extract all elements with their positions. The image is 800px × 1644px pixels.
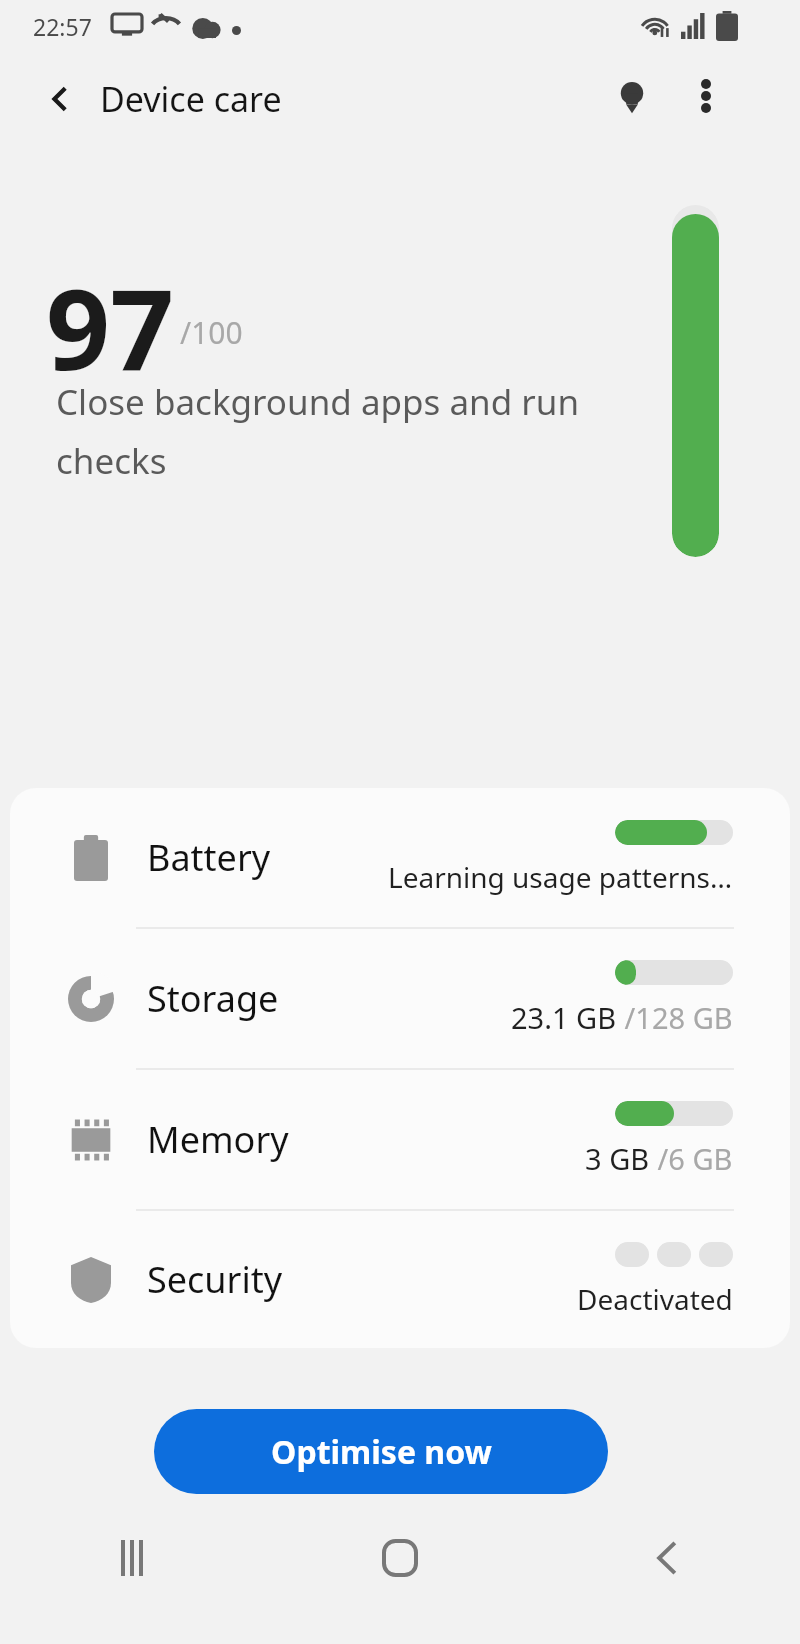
- button[interactable]: Storage: [10, 929, 790, 1068]
- staticText: 3 GB: [585, 1139, 650, 1178]
- staticText: /6 GB: [650, 1139, 733, 1178]
- staticText: Device care: [100, 76, 282, 122]
- staticText: /128 GB: [617, 998, 733, 1037]
- staticText: Deactivated: [577, 1280, 733, 1318]
- staticText: Optimise now: [271, 1430, 492, 1474]
- button[interactable]: More options: [676, 66, 736, 126]
- staticText: Battery: [147, 833, 271, 882]
- button[interactable]: Back: [30, 68, 92, 130]
- staticText: Memory: [147, 1115, 289, 1164]
- button[interactable]: Memory: [10, 1070, 790, 1209]
- button[interactable]: Back: [619, 1510, 715, 1606]
- staticText: Close background apps and run checks: [56, 378, 636, 484]
- button[interactable]: Optimise now: [154, 1409, 608, 1494]
- staticText: 22:57: [33, 11, 92, 42]
- staticText: Security: [147, 1255, 283, 1304]
- staticText: /100: [180, 312, 243, 353]
- staticText: 23.1 GB: [511, 998, 617, 1037]
- staticText: Learning usage patterns…: [388, 858, 733, 896]
- button[interactable]: Battery: [10, 788, 790, 927]
- staticText: 97: [46, 250, 175, 403]
- button[interactable]: Recents: [85, 1510, 181, 1606]
- button[interactable]: Tips: [600, 66, 664, 130]
- button[interactable]: Security: [10, 1211, 790, 1348]
- button[interactable]: Home: [352, 1510, 448, 1606]
- staticText: Storage: [147, 974, 279, 1023]
